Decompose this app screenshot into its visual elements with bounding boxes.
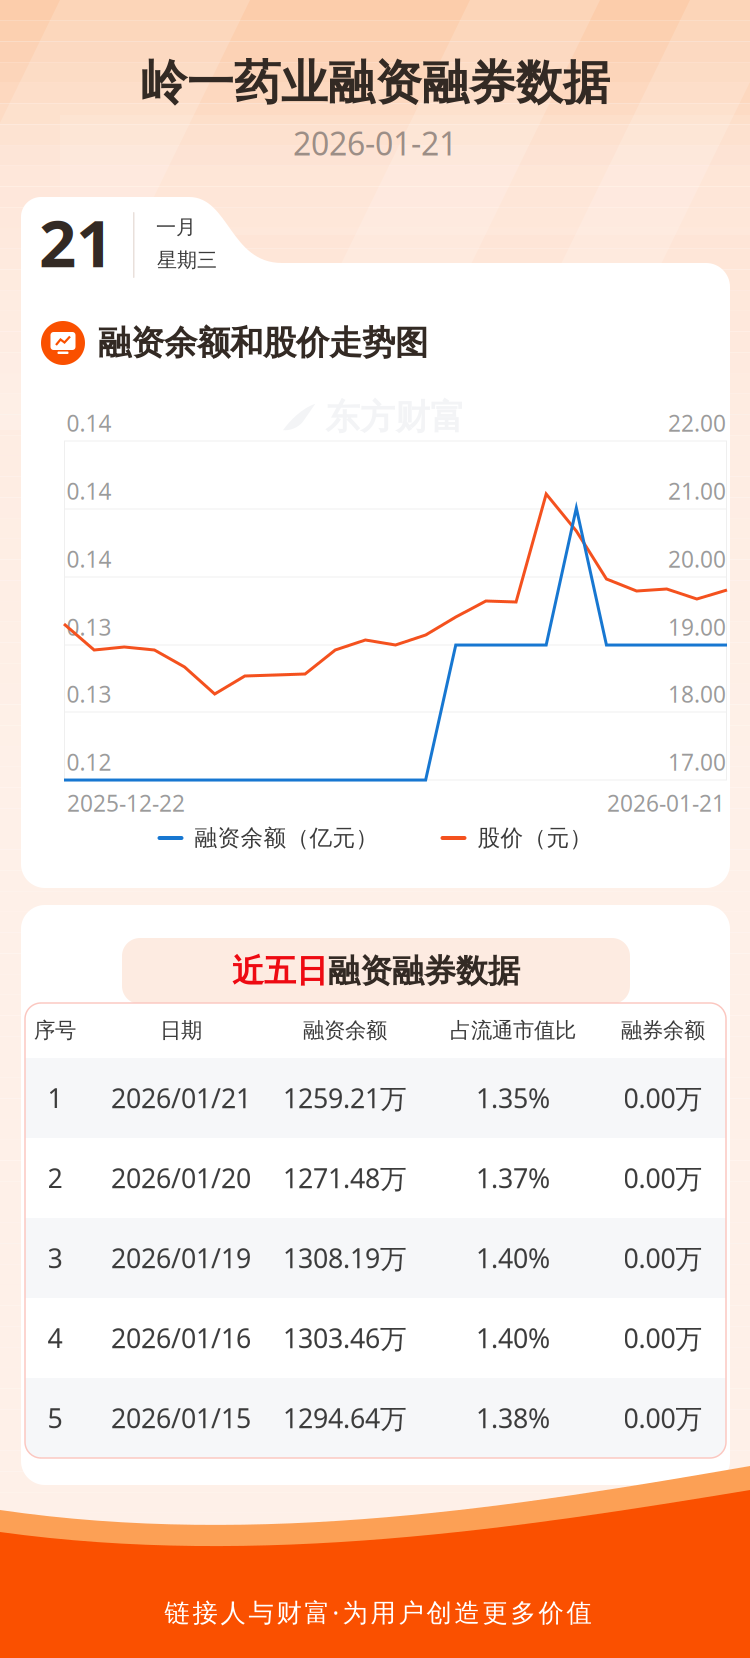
- staticText: 0.14: [66, 408, 111, 438]
- staticText: 融资余额: [303, 1017, 387, 1044]
- staticText: 2: [47, 1160, 62, 1196]
- staticText: 22.00: [668, 408, 726, 438]
- staticText: 19.00: [668, 612, 726, 642]
- staticText: 融资融券数据: [328, 951, 520, 991]
- staticText: 1: [47, 1080, 62, 1116]
- staticText: 1294.64万: [283, 1400, 407, 1436]
- staticText: 链接人与财富·为用户创造更多价值: [164, 1595, 591, 1629]
- staticText: 融资余额（亿元）: [194, 824, 378, 852]
- staticText: 1303.46万: [283, 1320, 407, 1356]
- staticText: 2026-01-21: [293, 122, 457, 164]
- staticText: 1.40%: [476, 1320, 550, 1356]
- staticText: 5: [47, 1400, 62, 1436]
- staticText: 18.00: [668, 679, 726, 709]
- staticText: 2026/01/21: [111, 1080, 251, 1116]
- staticText: 股价（元）: [477, 824, 592, 852]
- staticText: 序号: [34, 1017, 76, 1044]
- staticText: 0.00万: [623, 1240, 702, 1276]
- staticText: 21: [39, 199, 113, 285]
- staticText: 1271.48万: [283, 1160, 407, 1196]
- staticText: 4: [47, 1320, 62, 1356]
- staticText: 日期: [160, 1017, 202, 1044]
- staticText: 占流通市值比: [450, 1017, 576, 1044]
- staticText: 2026/01/16: [111, 1320, 251, 1356]
- staticText: 一月: [156, 215, 196, 239]
- staticText: 岭一药业融资融券数据: [140, 54, 610, 112]
- staticText: 1259.21万: [283, 1080, 407, 1116]
- staticText: 2026/01/15: [111, 1400, 251, 1436]
- staticText: 20.00: [668, 544, 726, 574]
- staticText: 0.00万: [623, 1320, 702, 1356]
- staticText: 1.38%: [476, 1400, 550, 1436]
- staticText: 1308.19万: [283, 1240, 407, 1276]
- staticText: 星期三: [157, 248, 217, 272]
- staticText: 融资余额和股价走势图: [98, 322, 428, 363]
- staticText: 0.13: [66, 612, 111, 642]
- staticText: 1.37%: [476, 1160, 550, 1196]
- staticText: 1.35%: [476, 1080, 550, 1116]
- staticText: 0.00万: [623, 1400, 702, 1436]
- staticText: 2026/01/20: [111, 1160, 251, 1196]
- staticText: 0.13: [66, 679, 111, 709]
- staticText: 3: [47, 1240, 62, 1276]
- staticText: 1.40%: [476, 1240, 550, 1276]
- staticText: 2026/01/19: [111, 1240, 251, 1276]
- staticText: 0.00万: [623, 1080, 702, 1116]
- staticText: 0.14: [66, 544, 111, 574]
- staticText: 2025-12-22: [67, 788, 185, 818]
- staticText: 融券余额: [621, 1017, 705, 1044]
- staticText: 近五日: [232, 951, 328, 991]
- staticText: 东方财富: [325, 396, 465, 439]
- staticText: 0.00万: [623, 1160, 702, 1196]
- staticText: 0.14: [66, 476, 111, 506]
- staticText: 0.12: [66, 747, 111, 777]
- staticText: 17.00: [668, 747, 726, 777]
- staticText: 2026-01-21: [607, 788, 725, 818]
- staticText: 21.00: [668, 476, 726, 506]
